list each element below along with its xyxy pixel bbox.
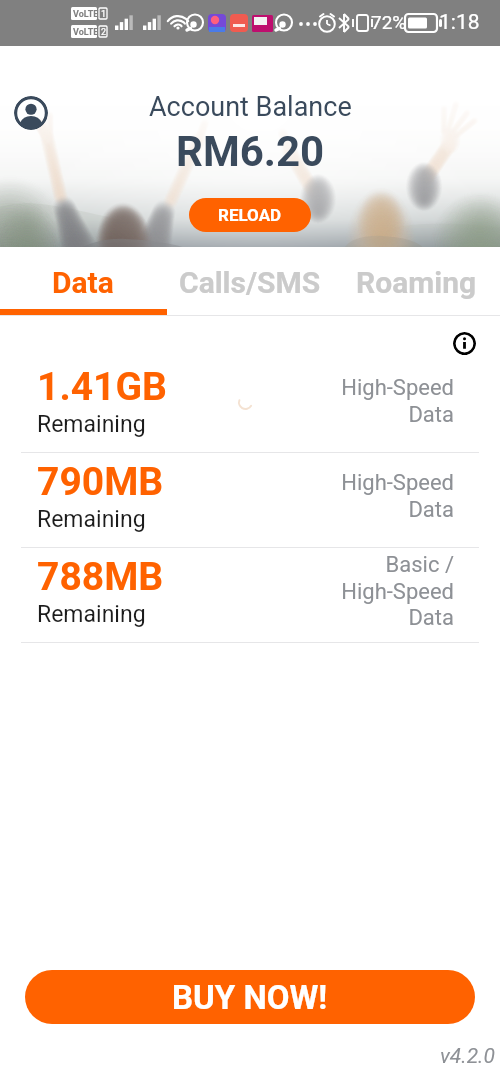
staticText: High-Speed Data [341,470,454,522]
button[interactable]: Information [453,332,476,355]
staticText: v4.2.0 [440,1044,495,1069]
staticText: RM6.20 [176,127,325,176]
staticText: Calls/SMS [179,265,321,300]
staticText: 1.41GB [37,364,167,410]
button[interactable]: RELOAD [189,198,311,232]
button[interactable]: Data [0,247,166,300]
staticText: 790MB [37,459,164,505]
staticText: 788MB [37,554,164,600]
button[interactable]: 1.41GB [0,358,500,453]
button[interactable]: 788MB [0,548,500,643]
button[interactable]: Calls/SMS [166,247,333,300]
staticText: Remaining [37,506,146,533]
staticText: RELOAD [218,205,282,225]
staticText: 1 [101,9,107,20]
staticText: Basic / High-Speed Data [341,552,454,630]
staticText: 2 [101,27,107,38]
staticText: VoLTE [73,9,99,20]
button[interactable]: 790MB [0,453,500,548]
staticText: High-Speed Data [341,375,454,427]
staticText: BUY NOW! [172,978,328,1017]
button[interactable]: Profile [14,96,48,130]
staticText: Roaming [356,265,477,300]
staticText: 1:18 [439,10,480,35]
staticText: Account Balance [149,91,352,123]
staticText: 72% [371,11,407,33]
button[interactable]: Roaming [333,247,500,300]
staticText: Data [52,265,114,300]
staticText: Remaining [37,601,146,628]
staticText: Remaining [37,411,146,438]
button[interactable]: BUY NOW! [25,970,475,1024]
staticText: VoLTE [73,27,99,38]
